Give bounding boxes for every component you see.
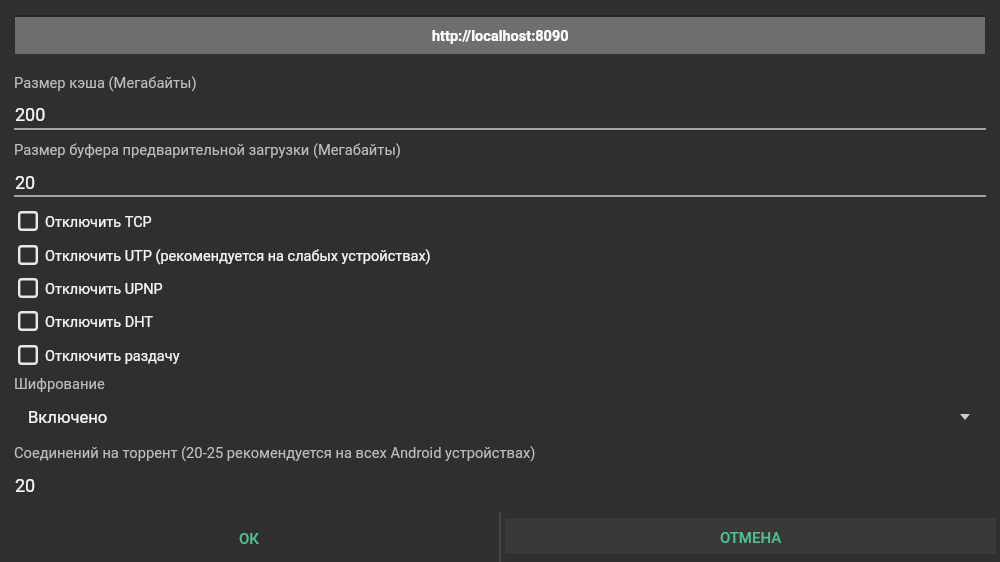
- staticText: ОТМЕНА: [720, 529, 782, 547]
- staticText: 20: [15, 475, 36, 496]
- button[interactable]: Отключить UTP (рекомендуется на слабых у…: [0, 239, 1000, 272]
- staticText: Отключить TCP: [45, 214, 152, 231]
- staticText: http://localhost:8090: [432, 28, 569, 45]
- staticText: 200: [15, 104, 46, 125]
- button[interactable]: 200: [0, 98, 1000, 131]
- staticText: Отключить UPNP: [45, 281, 163, 298]
- button[interactable]: 20: [0, 166, 1000, 199]
- staticText: Шифрование: [14, 375, 105, 392]
- button[interactable]: Отключить UPNP: [0, 272, 1000, 305]
- button[interactable]: Включено: [0, 401, 1000, 435]
- staticText: Размер буфера предварительной загрузки (…: [14, 141, 401, 158]
- staticText: ОК: [239, 530, 260, 548]
- staticText: Соединений на торрент (20-25 рекомендует…: [14, 444, 536, 461]
- staticText: Размер кэша (Мегабайты): [14, 74, 197, 91]
- button[interactable]: Отключить TCP: [0, 205, 1000, 238]
- button[interactable]: 20: [0, 469, 1000, 502]
- staticText: Включено: [28, 408, 108, 427]
- staticText: Отключить UTP (рекомендуется на слабых у…: [45, 248, 431, 265]
- staticText: Отключить DHT: [45, 314, 154, 331]
- button[interactable]: ОК: [0, 511, 499, 562]
- staticText: 20: [15, 172, 36, 193]
- other: Open encryption dropdown: [960, 414, 970, 420]
- button[interactable]: ОТМЕНА: [501, 511, 1000, 562]
- staticText: Отключить раздачу: [45, 348, 180, 365]
- button[interactable]: Отключить раздачу: [0, 339, 1000, 372]
- button[interactable]: http://localhost:8090: [15, 17, 985, 54]
- button[interactable]: Отключить DHT: [0, 305, 1000, 338]
